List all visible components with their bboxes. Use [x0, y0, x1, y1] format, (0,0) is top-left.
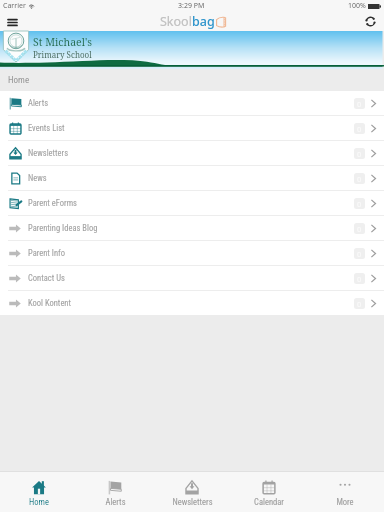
button[interactable]: More [307, 471, 383, 512]
staticText: Contact Us [28, 273, 65, 283]
button[interactable]: Refresh [364, 15, 377, 28]
staticText: Parent Info [28, 248, 66, 258]
staticText: News [28, 173, 47, 183]
staticText: Kool Kontent [28, 298, 71, 308]
button[interactable]: Menu [3, 13, 21, 31]
button[interactable]: Newsletters [154, 471, 230, 512]
staticText: Parent eForms [28, 198, 77, 208]
button[interactable]: Kool Kontent [0, 291, 384, 315]
staticText: Newsletters [172, 497, 213, 507]
staticText: 0 [357, 174, 362, 184]
staticText: Alerts [105, 497, 126, 507]
button[interactable]: Parenting Ideas Blog [0, 216, 384, 240]
staticText: 0 [357, 299, 362, 309]
button[interactable]: Contact Us [0, 266, 384, 290]
staticText: 0 [357, 149, 362, 159]
staticText: Home [8, 75, 30, 86]
staticText: Newsletters [28, 148, 69, 158]
button[interactable]: Calendar [231, 471, 307, 512]
staticText: More [336, 497, 354, 507]
staticText: 0 [357, 274, 362, 284]
button[interactable]: Alerts [77, 471, 153, 512]
button[interactable]: Events List [0, 116, 384, 140]
staticText: Skool [160, 13, 192, 30]
staticText: 0 [357, 199, 362, 209]
button[interactable]: Parent Info [0, 241, 384, 265]
staticText: Calendar [254, 497, 284, 507]
staticText: 3:29 PM [178, 1, 205, 11]
staticText: 0 [357, 124, 362, 134]
staticText: Events List [28, 123, 65, 133]
button[interactable]: Newsletters [0, 141, 384, 165]
button[interactable]: Parent eForms [0, 191, 384, 215]
staticText: 100% [348, 1, 366, 11]
button[interactable]: News [0, 166, 384, 190]
staticText: 0 [357, 249, 362, 259]
staticText: Alerts [28, 98, 49, 108]
button[interactable]: Home [1, 471, 77, 512]
staticText: bag [192, 13, 215, 30]
button[interactable]: Alerts [0, 91, 384, 115]
staticText: St Michael's [33, 35, 93, 49]
staticText: 0 [357, 99, 362, 109]
staticText: Home [29, 497, 49, 507]
staticText: Parenting Ideas Blog [28, 223, 98, 233]
staticText: Carrier [3, 1, 26, 11]
staticText: 0 [357, 224, 362, 234]
staticText: Primary School [33, 49, 92, 60]
